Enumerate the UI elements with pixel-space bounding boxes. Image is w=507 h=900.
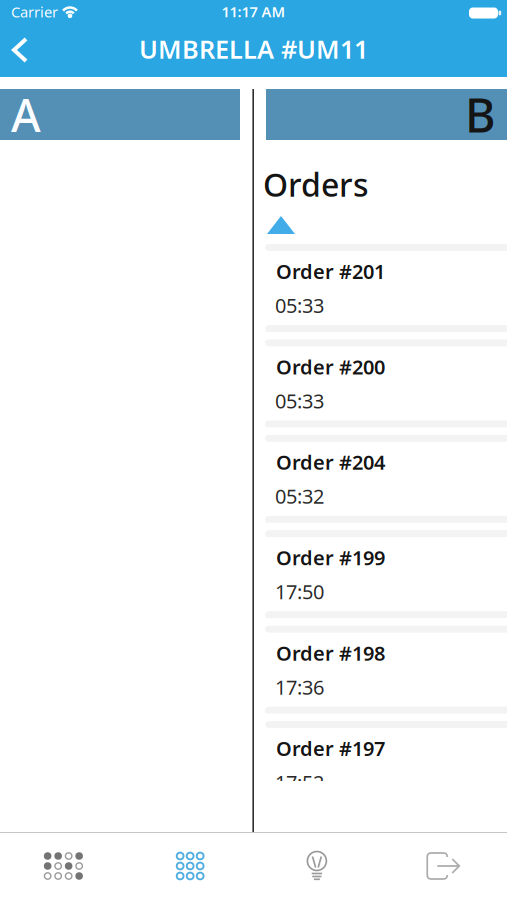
button[interactable] xyxy=(380,833,507,900)
button[interactable]: Order #200 xyxy=(265,339,507,427)
button[interactable]: Order #204 xyxy=(265,435,507,523)
button[interactable]: Order #198 xyxy=(265,626,507,714)
staticText: 05:33 xyxy=(275,387,324,414)
staticText: Carrier xyxy=(11,2,58,21)
button[interactable] xyxy=(4,33,38,67)
button[interactable] xyxy=(127,833,254,900)
staticText: Order #198 xyxy=(276,640,385,666)
staticText: 05:32 xyxy=(275,483,324,509)
button[interactable] xyxy=(0,833,127,900)
button[interactable]: Order #197 xyxy=(265,721,507,781)
staticText: UMBRELLA #UM11 xyxy=(139,32,368,66)
staticText: Order #197 xyxy=(276,735,385,762)
button[interactable]: Order #199 xyxy=(265,530,507,618)
staticText: 05:33 xyxy=(275,292,324,319)
staticText: 17:36 xyxy=(275,674,324,700)
staticText: Orders xyxy=(263,163,369,205)
staticText: 11:17 AM xyxy=(221,2,285,21)
staticText: Order #201 xyxy=(276,258,385,285)
staticText: Order #204 xyxy=(276,449,385,475)
button[interactable] xyxy=(266,214,295,233)
staticText: B xyxy=(465,83,496,145)
staticText: Order #200 xyxy=(276,353,385,380)
staticText: Order #199 xyxy=(276,544,385,571)
staticText: 17:50 xyxy=(275,578,324,605)
staticText: A xyxy=(11,84,41,145)
button[interactable]: Order #201 xyxy=(265,244,507,332)
button[interactable] xyxy=(253,833,380,900)
staticText: 17:52 xyxy=(275,769,324,796)
